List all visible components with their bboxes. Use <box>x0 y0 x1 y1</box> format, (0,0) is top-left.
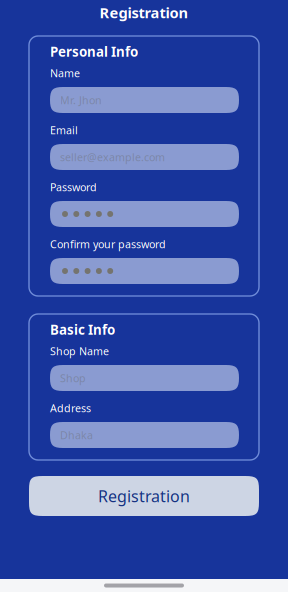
staticText: seller@example.com <box>60 150 165 164</box>
staticText: Shop Name <box>50 344 109 358</box>
staticText: Dhaka <box>60 428 93 442</box>
button[interactable] <box>50 201 239 227</box>
button[interactable]: Registration <box>29 476 259 516</box>
staticText: Email <box>50 123 78 137</box>
button[interactable]: seller@example.com <box>50 144 239 170</box>
staticText: Registration <box>99 3 188 22</box>
staticText: Shop <box>60 371 86 385</box>
button[interactable]: Mr. Jhon <box>50 87 239 113</box>
staticText: Personal Info <box>50 43 138 60</box>
staticText: Name <box>50 66 80 80</box>
staticText: Password <box>50 180 97 194</box>
staticText: Registration <box>98 485 190 507</box>
staticText: Mr. Jhon <box>60 93 102 107</box>
button[interactable]: Dhaka <box>50 422 239 448</box>
staticText: Basic Info <box>50 321 115 338</box>
button[interactable]: Shop <box>50 365 239 391</box>
staticText: Confirm your password <box>50 237 166 251</box>
staticText: Address <box>50 401 91 415</box>
button[interactable] <box>50 258 239 284</box>
